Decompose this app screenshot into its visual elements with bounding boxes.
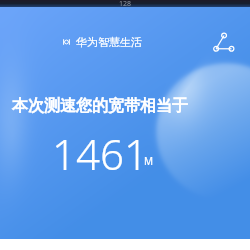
staticText: 128 [119,0,132,6]
staticText: M [144,154,154,168]
staticText: 本次测速您的宽带相当于 [12,96,188,116]
button[interactable]: 华为智慧生活 [63,35,142,49]
staticText: 华为智慧生活 [76,35,142,49]
button[interactable]: Share [209,28,237,56]
staticText: 1461 [52,125,148,182]
